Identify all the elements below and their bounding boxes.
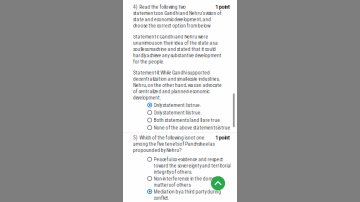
staticText: Statement-II: While Gandhi supported dec…: [133, 69, 222, 101]
button[interactable]: Only statement II is true.: [123, 109, 237, 116]
staticText: 1 point: [215, 134, 230, 141]
button[interactable]: Peaceful co-existence and respect toward…: [123, 156, 237, 175]
staticText: None of the above statements is true.: [154, 125, 231, 131]
staticText: 4) Read the following two: [133, 4, 186, 10]
staticText: Non-interference in the domestic matters…: [154, 175, 221, 188]
staticText: Statement-I: Gandhi and Nehru were unani…: [133, 34, 222, 65]
button[interactable]: Non-interference in the domestic matters…: [123, 175, 237, 188]
staticText: 1 point: [215, 4, 230, 10]
button[interactable]: Mediation by a third party during confli…: [123, 188, 237, 201]
staticText: Only statement II is true.: [154, 109, 202, 116]
staticText: Mediation by a third party during confli…: [154, 188, 221, 201]
staticText: among the five tenets of Panchsheel as p…: [133, 141, 215, 153]
staticText: statements on Gandhi and Nehru's vision …: [133, 10, 222, 29]
button[interactable]: Only statement I is true.: [123, 102, 237, 108]
button[interactable]: Scroll to top: [210, 175, 226, 191]
staticText: Both statements I and II are true: [154, 117, 220, 123]
button[interactable]: None of the above statements is true.: [123, 125, 237, 131]
staticText: Peaceful co-existence and respect toward…: [154, 156, 231, 175]
staticText: Only statement I is true.: [154, 102, 201, 108]
staticText: 5) Which of the following is not one: [133, 134, 205, 141]
button[interactable]: Both statements I and II are true: [123, 117, 237, 123]
